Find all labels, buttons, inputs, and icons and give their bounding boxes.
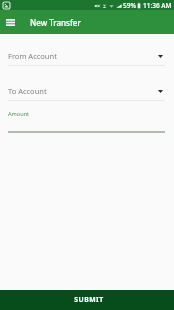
button[interactable]: Amount <box>0 108 174 133</box>
button[interactable]: To Account <box>0 82 174 101</box>
staticText: SUBMIT <box>74 295 104 304</box>
staticText: 59% <box>123 1 136 10</box>
button[interactable]: From Account <box>0 47 174 66</box>
staticText: New Transfer <box>30 17 81 28</box>
button[interactable]: Open navigation menu <box>0 10 20 34</box>
staticText: From Account <box>8 51 57 61</box>
staticText: Amount <box>8 110 30 118</box>
button[interactable]: SUBMIT <box>0 290 174 310</box>
staticText: 11:36 AM <box>143 1 172 10</box>
staticText: To Account <box>8 86 47 96</box>
